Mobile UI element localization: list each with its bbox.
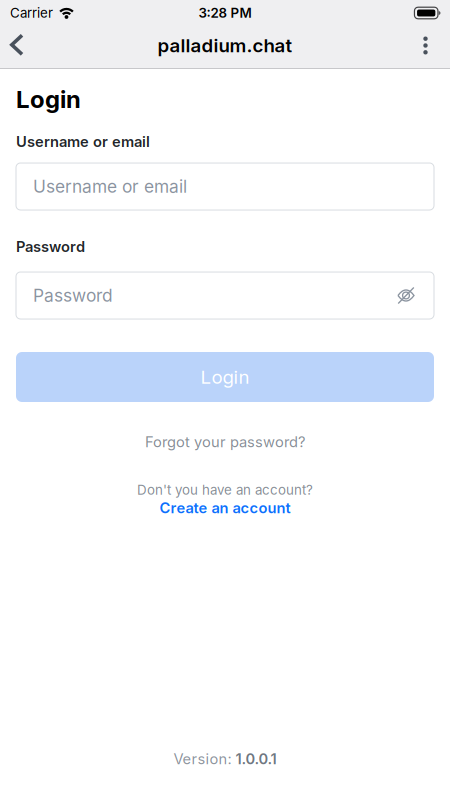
staticText: Forgot your password? — [145, 433, 305, 451]
staticText: Password — [33, 285, 113, 306]
staticText: palladium.chat — [157, 34, 292, 56]
button[interactable] — [10, 33, 24, 56]
staticText: Don't you have an account? — [137, 482, 313, 498]
button[interactable]: Forgot your password? — [145, 433, 305, 451]
staticText: Login — [16, 85, 81, 113]
button[interactable] — [397, 287, 415, 304]
button[interactable]: Login — [16, 352, 434, 402]
staticText: Login — [200, 366, 249, 388]
staticText: Password — [16, 238, 85, 255]
button[interactable]: Create an account — [159, 499, 290, 517]
button[interactable]: Username or email — [16, 163, 434, 210]
button[interactable] — [423, 36, 428, 54]
staticText: Version: — [173, 750, 231, 768]
staticText: Carrier — [10, 5, 53, 21]
staticText: Create an account — [159, 499, 290, 517]
button[interactable]: Password — [16, 272, 434, 319]
staticText: Username or email — [16, 133, 150, 150]
staticText: 3:28 PM — [198, 5, 251, 21]
staticText: 1.0.0.1 — [235, 750, 276, 768]
staticText: Username or email — [33, 176, 187, 197]
